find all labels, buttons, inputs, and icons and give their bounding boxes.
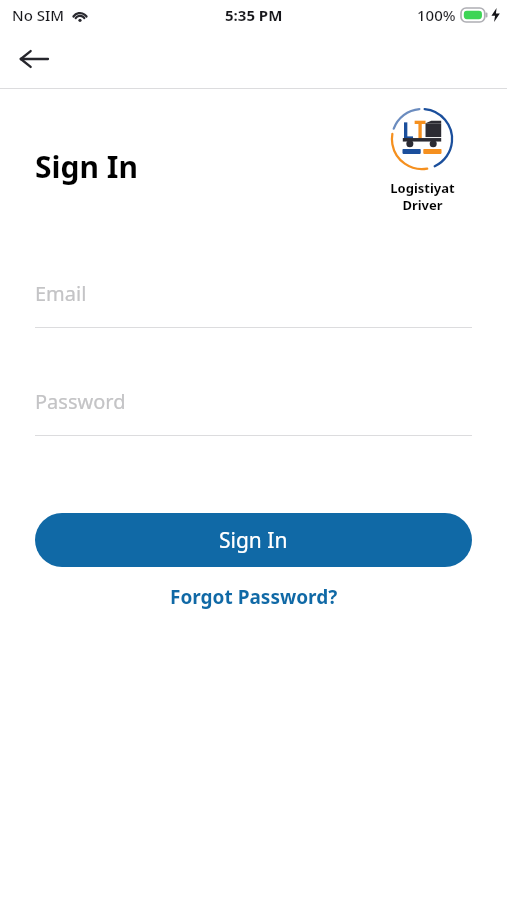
button[interactable]: Email	[35, 270, 472, 316]
staticText: Forgot Password?	[170, 584, 338, 610]
staticText: Email	[35, 280, 87, 307]
button[interactable]: Password	[35, 378, 472, 424]
staticText: Sign In	[219, 526, 288, 555]
staticText: No SIM	[12, 5, 65, 25]
staticText: 5:35 PM	[225, 5, 283, 25]
button[interactable]: Back	[10, 35, 58, 83]
staticText: 100%	[417, 5, 456, 25]
staticText: Sign In	[35, 146, 138, 187]
staticText: Password	[35, 388, 126, 415]
staticText: Logistiyat Driver	[390, 179, 455, 214]
button[interactable]: Sign In	[35, 513, 472, 567]
button[interactable]: Forgot Password?	[0, 577, 507, 617]
